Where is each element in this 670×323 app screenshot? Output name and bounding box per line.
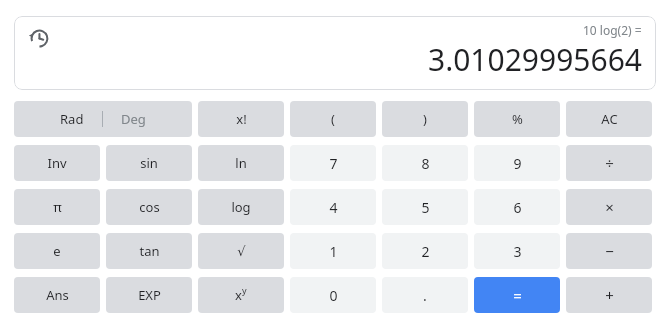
button[interactable]: 6	[474, 189, 560, 225]
button[interactable]: 1	[290, 233, 376, 269]
staticText: Rad	[60, 110, 84, 128]
button[interactable]: ln	[198, 145, 284, 181]
button[interactable]: )	[382, 101, 468, 137]
staticText: y	[242, 284, 247, 296]
staticText: .	[423, 286, 427, 305]
button[interactable]: 5	[382, 189, 468, 225]
button[interactable]: +	[566, 277, 652, 313]
staticText: Deg	[121, 110, 146, 128]
button[interactable]: 9	[474, 145, 560, 181]
button[interactable]: =	[474, 277, 560, 313]
button[interactable]: √	[198, 233, 284, 269]
button[interactable]: sin	[106, 145, 192, 181]
staticText: )	[423, 110, 427, 128]
button[interactable]: ÷	[566, 145, 652, 181]
button[interactable]: x	[198, 277, 284, 313]
staticText: cos	[139, 198, 160, 216]
staticText: −	[605, 241, 614, 261]
staticText: +	[605, 285, 614, 305]
staticText: 2	[421, 242, 430, 261]
staticText: x!	[236, 110, 247, 128]
button[interactable]: EXP	[106, 277, 192, 313]
button[interactable]: π	[14, 189, 100, 225]
button[interactable]: −	[566, 233, 652, 269]
staticText: 1	[329, 242, 338, 261]
button[interactable]: tan	[106, 233, 192, 269]
staticText: 3	[513, 242, 522, 261]
staticText: ln	[235, 154, 247, 172]
button[interactable]: Ans	[14, 277, 100, 313]
button[interactable]: (	[290, 101, 376, 137]
button[interactable]: 2	[382, 233, 468, 269]
staticText: sin	[140, 154, 158, 172]
staticText: e	[53, 242, 61, 260]
button[interactable]: cos	[106, 189, 192, 225]
staticText: =	[513, 285, 522, 305]
staticText: tan	[139, 242, 160, 260]
button[interactable]: Inv	[14, 145, 100, 181]
button[interactable]: Rad	[14, 101, 192, 137]
button[interactable]: 7	[290, 145, 376, 181]
staticText: Ans	[46, 286, 69, 304]
staticText: 9	[513, 154, 522, 173]
staticText: 5	[421, 198, 430, 217]
staticText: 0	[329, 286, 338, 305]
button[interactable]: 8	[382, 145, 468, 181]
button[interactable]: .	[382, 277, 468, 313]
button[interactable]: ×	[566, 189, 652, 225]
staticText: 4	[329, 198, 338, 217]
staticText: %	[512, 110, 523, 128]
staticText: √	[237, 244, 246, 259]
staticText: ×	[605, 197, 614, 217]
staticText: π	[53, 198, 62, 216]
button[interactable]: 4	[290, 189, 376, 225]
staticText: x	[235, 286, 242, 304]
button[interactable]: History	[26, 26, 50, 50]
staticText: 6	[513, 198, 522, 217]
button[interactable]: log	[198, 189, 284, 225]
staticText: EXP	[138, 286, 161, 304]
staticText: 8	[421, 154, 430, 173]
staticText: 7	[329, 154, 338, 173]
button[interactable]: x!	[198, 101, 284, 137]
button[interactable]: %	[474, 101, 560, 137]
button[interactable]: 0	[290, 277, 376, 313]
staticText: ÷	[605, 153, 614, 173]
staticText: 10 log(2) =	[583, 22, 642, 38]
staticText: 3.01029995664	[428, 39, 642, 80]
staticText: AC	[601, 110, 618, 128]
staticText: Inv	[47, 154, 67, 172]
staticText: (	[331, 110, 335, 128]
button[interactable]: AC	[566, 101, 652, 137]
button[interactable]: 3	[474, 233, 560, 269]
button[interactable]: e	[14, 233, 100, 269]
staticText: log	[231, 198, 251, 216]
